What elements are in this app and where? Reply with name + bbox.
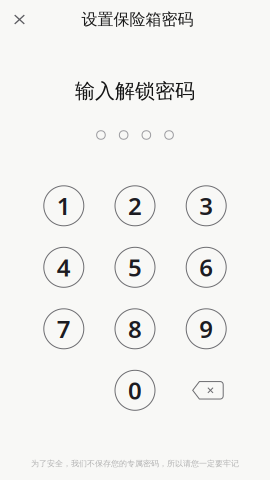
staticText: 8 xyxy=(128,312,142,345)
button[interactable]: 3 xyxy=(186,186,226,226)
staticText: 0 xyxy=(128,374,142,407)
staticText: 3 xyxy=(199,189,213,222)
staticText: 为了安全，我们不保存您的专属密码，所以请您一定要牢记 xyxy=(31,458,239,468)
staticText: 2 xyxy=(128,189,142,222)
button[interactable]: 2 xyxy=(115,186,155,226)
staticText: 9 xyxy=(199,312,213,345)
staticText: 4 xyxy=(57,251,71,284)
staticText: 设置保险箱密码 xyxy=(81,9,193,30)
button[interactable]: 8 xyxy=(115,309,155,349)
button[interactable]: 9 xyxy=(186,309,226,349)
staticText: 输入解锁密码 xyxy=(75,78,195,104)
button[interactable]: 4 xyxy=(44,247,84,287)
staticText: 6 xyxy=(199,251,213,284)
button[interactable]: 7 xyxy=(44,309,84,349)
button[interactable]: Delete xyxy=(186,370,226,410)
button[interactable]: 5 xyxy=(115,247,155,287)
button[interactable]: Close xyxy=(4,3,34,36)
button[interactable]: 6 xyxy=(186,247,226,287)
staticText: 1 xyxy=(57,189,71,222)
button[interactable]: 1 xyxy=(44,186,84,226)
button[interactable]: 0 xyxy=(115,370,155,410)
staticText: 7 xyxy=(57,312,71,345)
staticText: 5 xyxy=(128,251,142,284)
